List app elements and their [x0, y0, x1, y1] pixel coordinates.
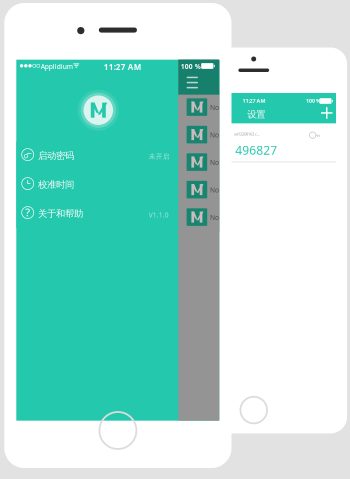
staticText: No: [210, 185, 219, 194]
staticText: 100 %: [181, 62, 201, 71]
staticText: 11:27 AM: [242, 97, 265, 104]
staticText: 11:27 AM: [104, 62, 142, 72]
button[interactable]: ?: [16, 199, 178, 228]
button[interactable]: No: [178, 150, 219, 177]
button[interactable]: Menu: [178, 70, 206, 93]
staticText: 未开启: [149, 152, 170, 161]
staticText: 496827: [235, 142, 277, 158]
button[interactable]: No: [178, 177, 219, 205]
button[interactable]: No: [178, 205, 219, 232]
button[interactable]: od12268163.c…: [171, 124, 336, 162]
staticText: V1.1.0: [149, 210, 169, 219]
staticText: No: [210, 158, 219, 167]
staticText: 关于和帮助: [38, 208, 83, 219]
button[interactable]: 启动密码: [16, 141, 178, 170]
staticText: 100 %: [306, 97, 321, 104]
button[interactable]: 校准时间: [16, 170, 178, 199]
staticText: No: [210, 103, 219, 112]
button[interactable]: Add: [316, 103, 338, 123]
staticText: od12268163.c…: [234, 131, 260, 136]
staticText: Applidium: [41, 62, 73, 71]
staticText: No: [210, 130, 219, 139]
button[interactable]: No: [178, 122, 219, 150]
staticText: No: [210, 213, 219, 222]
staticText: 启动密码: [38, 150, 74, 161]
staticText: 校准时间: [38, 179, 74, 190]
button[interactable]: No: [178, 95, 219, 122]
staticText: ?: [25, 205, 30, 219]
staticText: 设置: [247, 109, 265, 120]
